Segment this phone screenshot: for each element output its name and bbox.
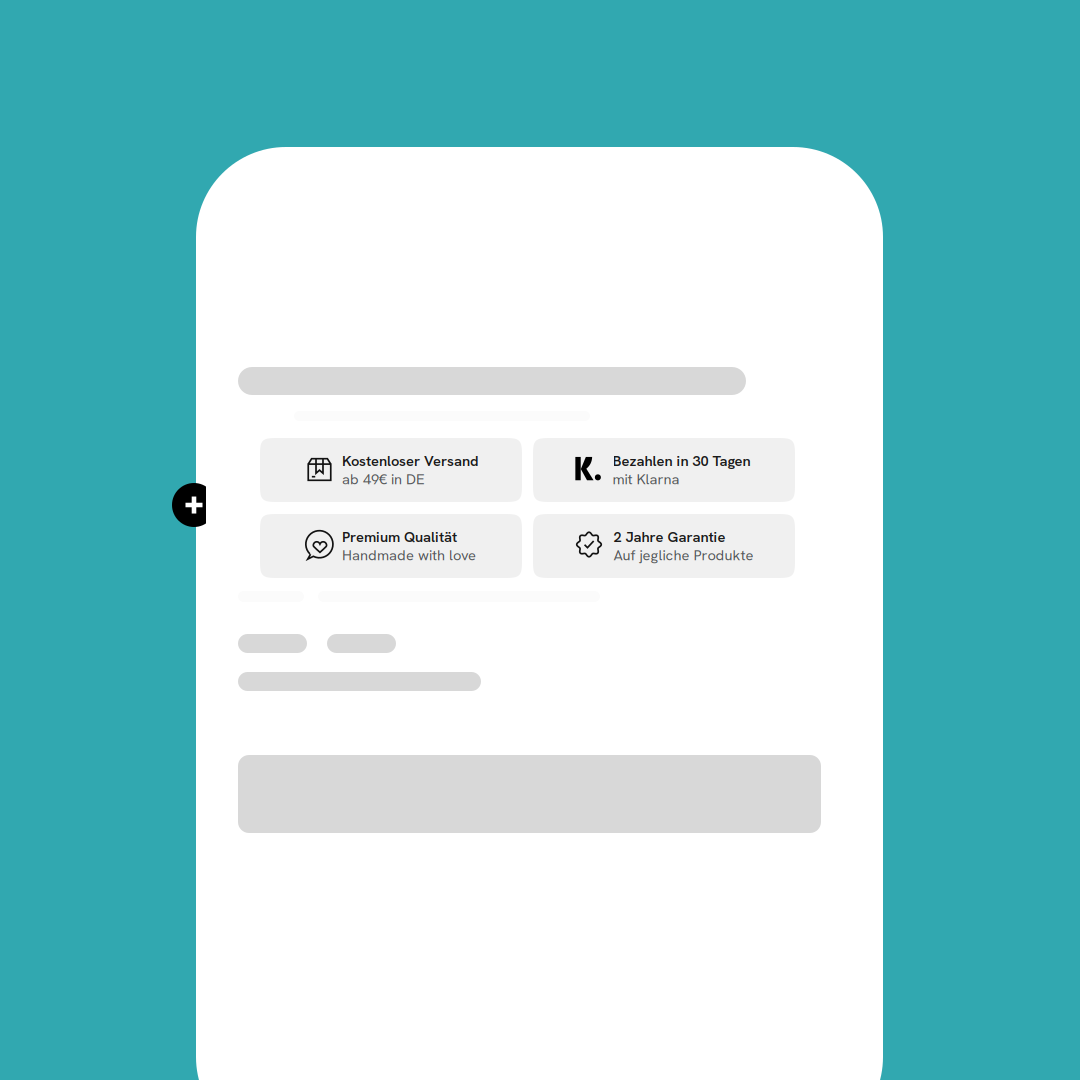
staticText: Bezahlen in 30 Tagen [612,451,750,470]
staticText: ab 49€ in DE [342,469,425,489]
staticText: Kostenloser Versand [342,451,478,470]
staticText: Handmade with love [342,545,476,565]
staticText: 2 Jahre Garantie [613,527,725,546]
staticText: Auf jegliche Produkte [613,545,753,565]
staticText: mit Klarna [612,469,679,489]
button[interactable]: Add product hotspot [172,483,206,527]
button[interactable]: Premium Qualität [260,514,522,578]
staticText: Premium Qualität [342,527,457,546]
button[interactable]: Kostenloser Versand [260,438,522,502]
button[interactable]: Bezahlen in 30 Tagen [533,438,795,502]
button[interactable]: 2 Jahre Garantie [533,514,795,578]
